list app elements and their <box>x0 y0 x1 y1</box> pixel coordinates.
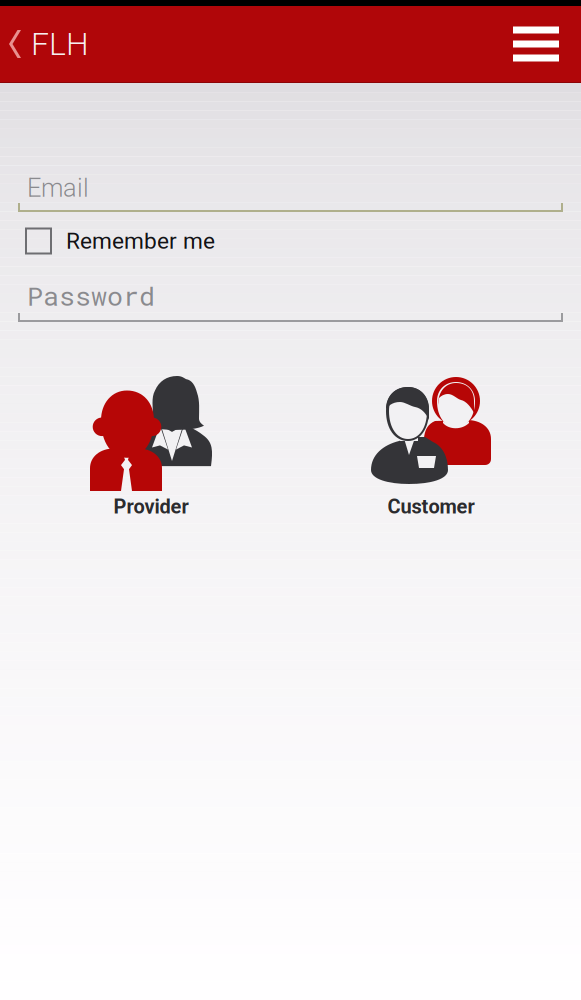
staticText: Provider <box>113 495 188 518</box>
staticText: FLH <box>31 25 89 63</box>
button[interactable]: Menu <box>491 6 581 82</box>
button[interactable]: Customer <box>343 375 519 527</box>
staticText: Customer <box>387 495 474 518</box>
staticText: Remember me <box>66 228 215 254</box>
button[interactable]: Remember me <box>0 223 581 259</box>
staticText: Password <box>27 278 155 313</box>
button[interactable]: FLH <box>0 6 103 82</box>
staticText: Email <box>27 173 89 203</box>
button[interactable]: Provider <box>63 375 239 527</box>
